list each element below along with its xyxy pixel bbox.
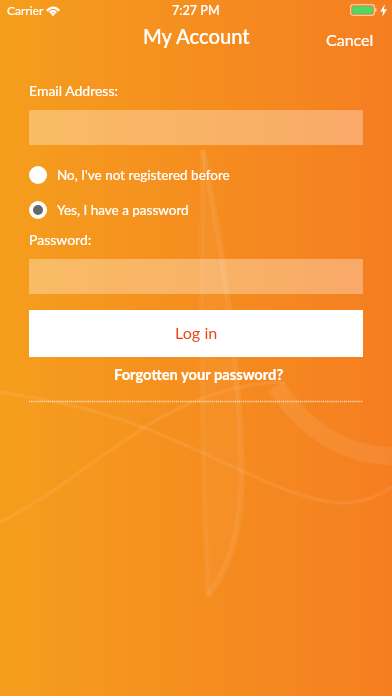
other: Charging [380,4,387,17]
staticText: No, I've not registered before [57,167,230,183]
staticText: My Account [143,24,250,48]
button[interactable]: Yes, I have a password [29,200,363,220]
staticText: Carrier [7,3,44,17]
button[interactable]: No, I've not registered before [29,165,363,185]
staticText: Log in [175,323,218,342]
staticText: 7:27 PM [172,3,220,18]
button[interactable]: Forgotten your password? [29,363,363,385]
staticText: Password: [29,231,92,248]
staticText: Forgotten your password? [114,365,284,383]
button[interactable] [29,110,363,145]
button[interactable]: Log in [29,310,363,357]
button[interactable]: Cancel [308,19,392,60]
staticText: Cancel [326,30,374,49]
staticText: Email Address: [29,82,118,99]
staticText: Yes, I have a password [57,202,189,218]
button[interactable] [29,259,363,294]
other: Wi-Fi signal [46,2,60,16]
other: Battery [350,4,377,16]
